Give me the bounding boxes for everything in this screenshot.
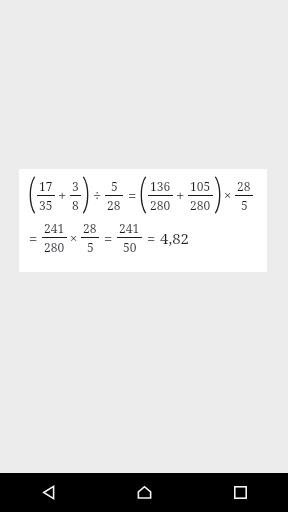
staticText: 105: [190, 178, 211, 194]
staticText: =: [147, 228, 156, 248]
staticText: =: [128, 185, 137, 205]
staticText: 3: [72, 178, 79, 194]
staticText: 241: [119, 220, 140, 236]
staticText: ×: [70, 229, 78, 247]
staticText: 35: [39, 197, 53, 213]
button[interactable]: Home: [96, 473, 192, 512]
staticText: 50: [123, 239, 137, 255]
staticText: 136: [150, 178, 171, 194]
staticText: 280: [150, 197, 171, 213]
staticText: 280: [44, 239, 65, 255]
staticText: 5: [241, 197, 248, 213]
staticText: 5: [87, 239, 94, 255]
staticText: 28: [83, 220, 97, 236]
staticText: +: [176, 185, 185, 205]
staticText: =: [29, 228, 38, 248]
button[interactable]: Recent apps: [192, 473, 288, 512]
staticText: ×: [224, 186, 232, 204]
button[interactable]: 17: [19, 169, 267, 272]
staticText: 4,82: [160, 228, 189, 248]
staticText: ÷: [93, 185, 102, 205]
staticText: +: [58, 185, 67, 205]
staticText: =: [104, 228, 113, 248]
button[interactable]: Back: [0, 473, 96, 512]
staticText: 241: [44, 220, 65, 236]
staticText: 28: [107, 197, 121, 213]
staticText: 8: [72, 197, 79, 213]
staticText: 280: [190, 197, 211, 213]
staticText: 5: [111, 178, 118, 194]
staticText: 28: [237, 178, 251, 194]
staticText: 17: [39, 178, 53, 194]
